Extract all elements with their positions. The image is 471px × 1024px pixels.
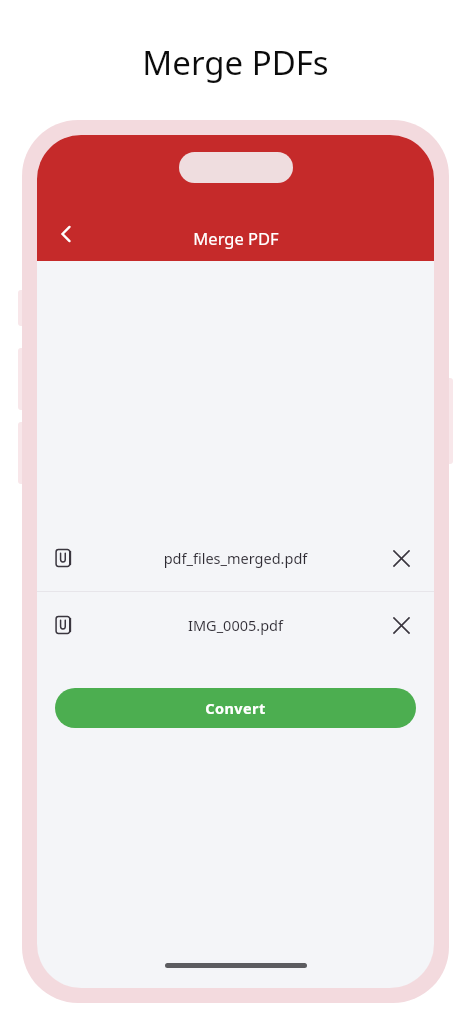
staticText: Merge PDF (193, 227, 279, 249)
staticText: IMG_0005.pdf (87, 615, 384, 635)
staticText: Merge PDFs (142, 40, 329, 85)
button[interactable]: Convert (55, 688, 416, 728)
button[interactable]: Back (45, 213, 87, 255)
staticText: pdf_files_merged.pdf (87, 548, 384, 568)
button[interactable]: Remove pdf_files_merged.pdf (384, 541, 418, 575)
button[interactable]: Remove IMG_0005.pdf (384, 608, 418, 642)
staticText: Convert (205, 698, 266, 718)
button[interactable]: IMG_0005.pdf (37, 592, 434, 658)
button[interactable]: pdf_files_merged.pdf (37, 525, 434, 591)
